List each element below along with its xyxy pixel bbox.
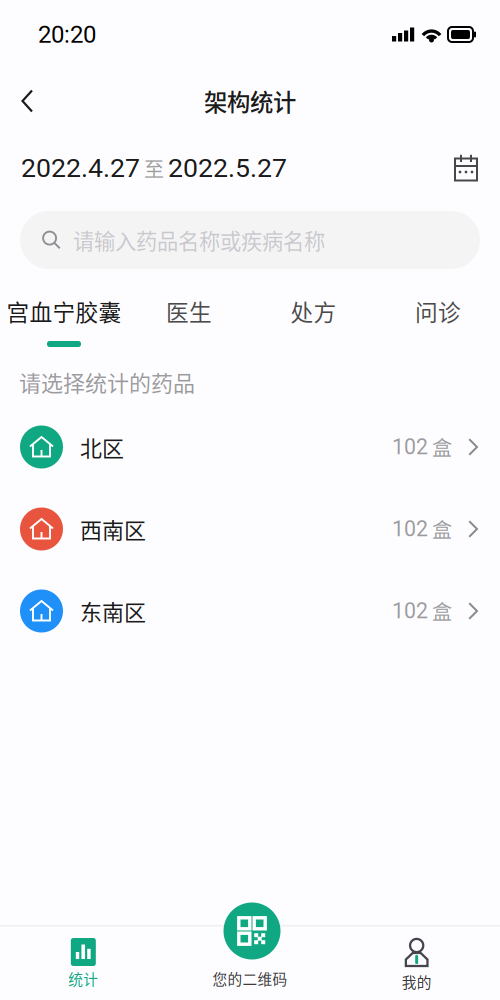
button[interactable]: 北区 [0,406,500,488]
staticText: 102 [392,434,428,459]
button[interactable]: 西南区 [0,488,500,570]
button[interactable]: 处方 [251,293,376,353]
button[interactable]: 我的 [333,925,500,1000]
button[interactable]: Search [20,211,480,269]
staticText: 20:20 [38,20,96,48]
button[interactable]: Your QR code [219,898,285,964]
staticText: 处方 [290,295,336,327]
staticText: 至 [140,153,168,182]
staticText: 2022.5.27 [168,152,287,184]
staticText: 请输入药品名称或疾病名称 [73,225,325,255]
staticText: 2022.4.27 [21,152,140,184]
button[interactable]: 问诊 [376,293,500,353]
button[interactable]: Pick date range [443,145,489,191]
staticText: 宫血宁胶囊 [6,295,121,327]
staticText: 医生 [166,295,212,327]
staticText: 问诊 [415,295,461,327]
staticText: 架构统计 [204,84,296,118]
staticText: 东南区 [80,595,146,627]
staticText: 盒 [428,432,452,461]
staticText: 102 [392,516,428,541]
button[interactable]: Your QR code [167,925,333,1000]
staticText: 北区 [80,431,124,463]
button[interactable]: Back [6,76,49,125]
staticText: 盒 [428,596,452,625]
button[interactable]: 东南区 [0,570,500,652]
staticText: 请选择统计的药品 [19,366,195,398]
button[interactable]: 宫血宁胶囊 [1,293,127,353]
button[interactable]: 医生 [127,293,251,353]
staticText: 您的二维码 [212,968,287,989]
staticText: 统计 [68,968,98,989]
staticText: 盒 [428,514,452,543]
button[interactable]: 统计 [0,925,167,1000]
staticText: 102 [392,598,428,623]
staticText: 西南区 [80,513,146,545]
staticText: 我的 [402,971,432,992]
